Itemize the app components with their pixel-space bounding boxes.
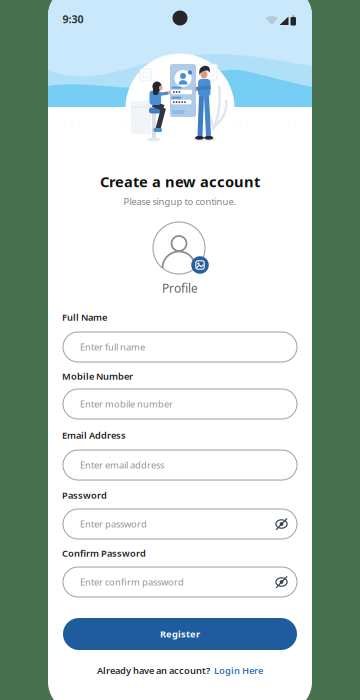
- button[interactable]: Enter email address: [63, 450, 297, 480]
- staticText: Password: [62, 489, 107, 501]
- staticText: Enter confirm password: [80, 576, 184, 588]
- staticText: Email Address: [62, 429, 126, 441]
- button[interactable]: Enter mobile number: [63, 389, 297, 419]
- staticText: Mobile Number: [62, 370, 133, 382]
- button[interactable]: Enter confirm password: [63, 567, 297, 597]
- staticText: Create a new account: [100, 172, 260, 191]
- button[interactable]: Show password: [271, 572, 291, 592]
- staticText: Register: [160, 628, 200, 640]
- staticText: Already have an account?: [97, 664, 210, 677]
- button[interactable]: Enter password: [63, 509, 297, 539]
- staticText: Profile: [162, 280, 198, 296]
- staticText: Please singup to continue.: [123, 195, 236, 208]
- button[interactable]: Login Here: [214, 664, 263, 677]
- button[interactable]: Add profile photo: [153, 222, 205, 274]
- button[interactable]: Enter full name: [63, 332, 297, 362]
- staticText: Enter mobile number: [80, 398, 173, 410]
- button[interactable]: Register: [63, 618, 297, 650]
- staticText: Enter full name: [80, 341, 145, 353]
- staticText: Enter email address: [80, 459, 164, 471]
- staticText: Full Name: [62, 311, 107, 323]
- button[interactable]: Show password: [271, 514, 291, 534]
- staticText: 9:30: [62, 12, 83, 26]
- staticText: Confirm Password: [62, 547, 146, 559]
- staticText: Login Here: [214, 664, 263, 677]
- staticText: Enter password: [80, 518, 147, 530]
